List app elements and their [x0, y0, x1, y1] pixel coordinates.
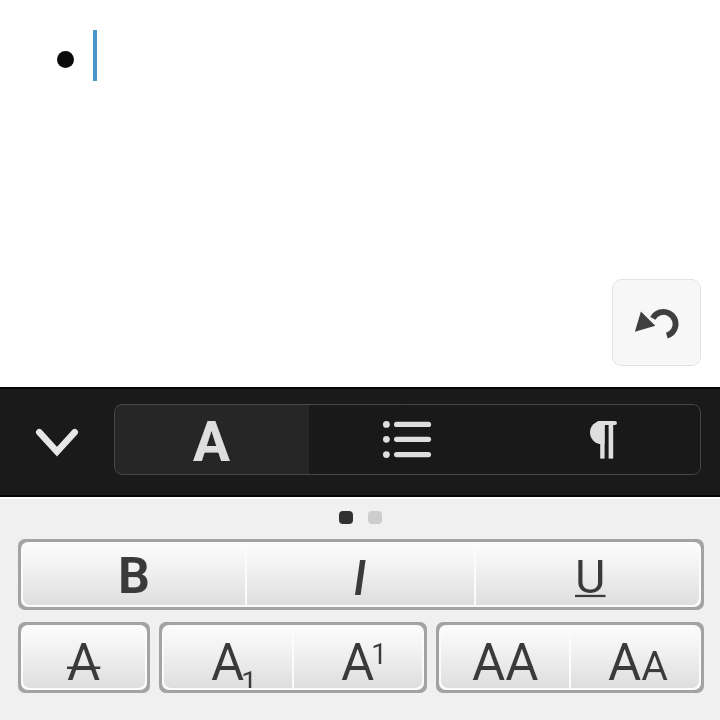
button[interactable]: Paragraph style	[505, 404, 701, 475]
button[interactable]: Increase text size	[441, 627, 569, 688]
button[interactable]: Italic	[247, 544, 474, 605]
staticText: AA	[472, 633, 539, 688]
staticText: A	[341, 633, 375, 688]
button[interactable]: Superscript	[294, 627, 422, 688]
button[interactable]: A	[114, 404, 309, 475]
staticText: A	[211, 633, 245, 688]
button[interactable]: Bold	[23, 544, 245, 605]
staticText: 1	[371, 637, 388, 671]
staticText: A	[67, 633, 101, 688]
button[interactable]: Undo	[612, 279, 701, 366]
button[interactable]: Underline	[476, 544, 699, 605]
staticText: 1	[241, 665, 258, 688]
button[interactable]: Collapse toolbar	[19, 387, 94, 497]
staticText: U	[575, 549, 606, 604]
button[interactable]: Decrease text size	[571, 627, 699, 688]
staticText: B	[118, 547, 150, 605]
staticText: A	[193, 410, 230, 474]
button[interactable]: Subscript	[164, 627, 292, 688]
button[interactable]: Lists	[309, 404, 505, 475]
staticText: AA	[608, 633, 669, 688]
button[interactable]: Strikethrough	[23, 627, 145, 688]
